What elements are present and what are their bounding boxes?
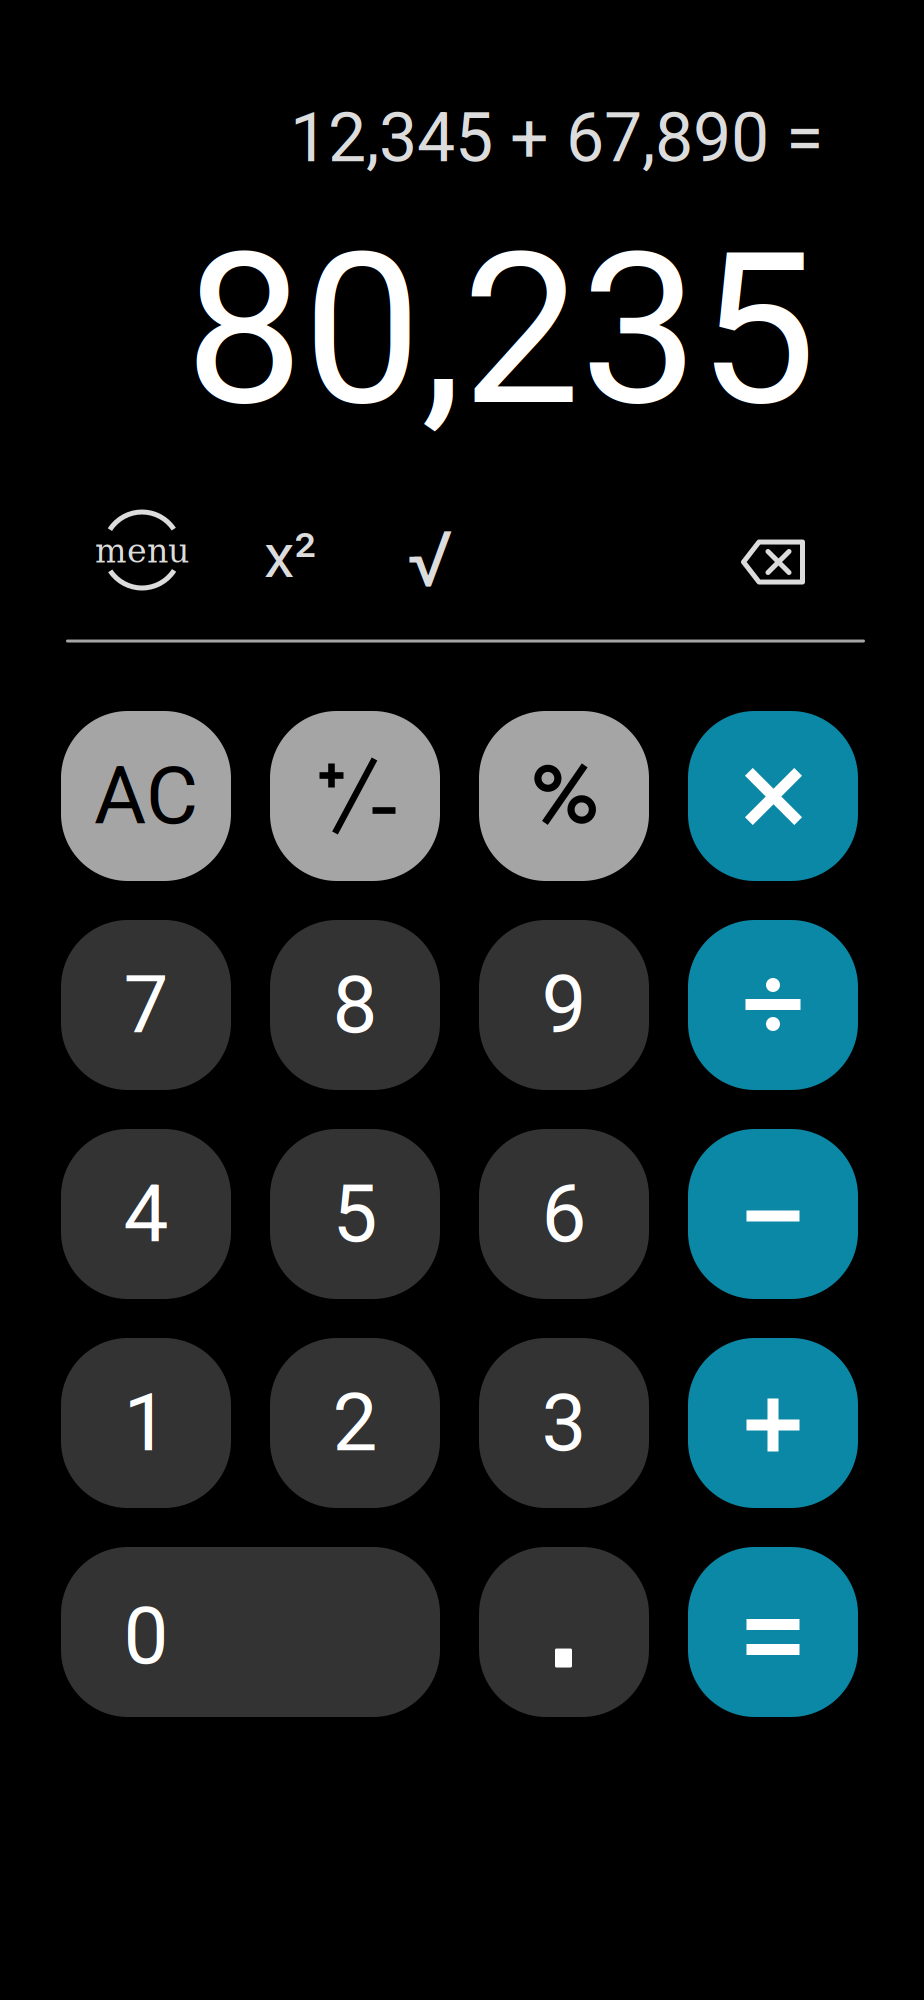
button[interactable]: 7 <box>61 920 231 1090</box>
button[interactable]: Add <box>688 1338 858 1508</box>
staticText: menu <box>95 532 189 570</box>
staticText: x² <box>264 520 316 592</box>
button[interactable]: 5 <box>270 1129 440 1299</box>
button[interactable]: Equals <box>688 1547 858 1717</box>
staticText: 12,345 + 67,890 = <box>290 98 823 178</box>
button[interactable]: 3 <box>479 1338 649 1508</box>
button[interactable]: 2 <box>270 1338 440 1508</box>
button[interactable]: Decimal point <box>479 1547 649 1717</box>
button[interactable]: Square <box>242 512 338 600</box>
staticText: 2 <box>332 1376 377 1470</box>
staticText: 7 <box>123 958 168 1052</box>
button[interactable]: 8 <box>270 920 440 1090</box>
staticText: 9 <box>541 958 586 1052</box>
staticText: 0 <box>123 1589 168 1683</box>
staticText: √ <box>407 515 453 605</box>
staticText: 5 <box>332 1167 377 1261</box>
button[interactable]: Backspace <box>721 518 825 606</box>
staticText: 8 <box>332 958 377 1052</box>
staticText: 80,235 <box>185 207 816 453</box>
button[interactable]: Divide <box>688 920 858 1090</box>
button[interactable]: Multiply <box>688 711 858 881</box>
button[interactable]: 4 <box>61 1129 231 1299</box>
button[interactable]: Subtract <box>688 1129 858 1299</box>
button[interactable]: AC <box>61 711 231 881</box>
staticText: 6 <box>541 1167 586 1261</box>
staticText: 1 <box>123 1376 168 1470</box>
button[interactable]: Square root <box>387 516 473 604</box>
staticText: AC <box>94 749 198 843</box>
button[interactable]: 1 <box>61 1338 231 1508</box>
button[interactable]: Percent <box>479 711 649 881</box>
staticText: 4 <box>123 1167 168 1261</box>
button[interactable]: Menu <box>92 506 192 594</box>
staticText: 3 <box>541 1376 586 1470</box>
button[interactable]: Plus minus <box>270 711 440 881</box>
button[interactable]: 0 <box>61 1547 440 1717</box>
button[interactable]: 9 <box>479 920 649 1090</box>
button[interactable]: 6 <box>479 1129 649 1299</box>
